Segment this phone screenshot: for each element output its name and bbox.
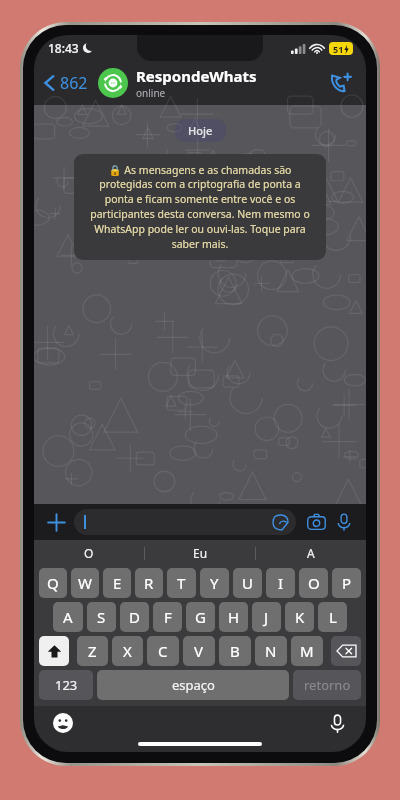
button[interactable]: retorno xyxy=(293,670,361,700)
button[interactable]: E xyxy=(103,568,131,598)
button[interactable]: Dictation xyxy=(324,710,350,736)
staticText: K xyxy=(295,607,305,627)
button[interactable]: Profile photo xyxy=(98,68,128,98)
button[interactable]: 🔒 As mensagens e as chamadas são protegi… xyxy=(74,154,326,260)
button[interactable]: G xyxy=(186,602,215,632)
button[interactable]: Shift xyxy=(39,636,69,666)
staticText: F xyxy=(164,607,172,627)
staticText: E xyxy=(113,573,122,593)
staticText: Hoje xyxy=(188,123,213,138)
button[interactable]: Emoji keyboard xyxy=(50,710,76,736)
button[interactable]: espaço xyxy=(97,670,289,700)
button[interactable]: Backspace xyxy=(331,636,361,666)
staticText: P xyxy=(342,573,352,593)
staticText: Eu xyxy=(193,545,208,561)
button[interactable]: V xyxy=(183,636,215,666)
button[interactable]: Voice message xyxy=(330,508,358,536)
button[interactable]: A xyxy=(53,602,83,632)
button[interactable]: Y xyxy=(200,568,229,598)
button[interactable]: Attach xyxy=(42,508,70,536)
staticText: B xyxy=(230,641,240,661)
button[interactable]: Camera xyxy=(302,508,330,536)
staticText: Q xyxy=(47,573,59,593)
button[interactable]: U xyxy=(233,568,262,598)
staticText: Y xyxy=(210,573,219,593)
staticText: T xyxy=(177,573,186,593)
staticText: espaço xyxy=(172,676,215,694)
button[interactable]: P xyxy=(332,568,361,598)
staticText: R xyxy=(144,573,154,593)
button[interactable]: Q xyxy=(39,568,67,598)
staticText: 123 xyxy=(55,676,78,694)
button[interactable]: 862 xyxy=(42,68,90,98)
button[interactable]: O xyxy=(299,568,328,598)
button[interactable]: K xyxy=(285,602,314,632)
button[interactable]: Profile photo xyxy=(98,66,324,100)
staticText: 18:43 xyxy=(48,40,79,56)
staticText: A xyxy=(307,545,315,561)
staticText: RespondeWhats xyxy=(136,66,257,86)
button[interactable]: D xyxy=(120,602,149,632)
staticText: U xyxy=(242,573,253,593)
staticText: W xyxy=(78,573,92,593)
button[interactable]: 123 xyxy=(39,670,93,700)
staticText: D xyxy=(129,607,140,627)
button[interactable]: A xyxy=(256,540,366,566)
button[interactable]: Video call xyxy=(324,66,358,100)
button[interactable]: C xyxy=(147,636,179,666)
button[interactable]: H xyxy=(219,602,248,632)
button[interactable]: Eu xyxy=(145,540,255,566)
button[interactable]: M xyxy=(291,636,323,666)
button[interactable]: J xyxy=(252,602,281,632)
staticText: 🔒 As mensagens e as chamadas são protegi… xyxy=(86,163,314,251)
staticText: 862 xyxy=(60,72,88,94)
staticText: G xyxy=(195,607,206,627)
button[interactable]: X xyxy=(112,636,143,666)
button[interactable] xyxy=(74,509,296,535)
staticText: N xyxy=(265,641,277,661)
button[interactable]: S xyxy=(87,602,116,632)
button[interactable]: R xyxy=(135,568,163,598)
button[interactable]: T xyxy=(167,568,196,598)
button[interactable]: O xyxy=(34,540,144,566)
button[interactable]: F xyxy=(153,602,182,632)
staticText: J xyxy=(264,607,269,627)
staticText: retorno xyxy=(304,676,351,694)
staticText: online xyxy=(136,86,166,100)
button[interactable]: L xyxy=(318,602,347,632)
button[interactable]: Z xyxy=(77,636,108,666)
staticText: A xyxy=(63,607,73,627)
staticText: O xyxy=(308,573,320,593)
button[interactable]: N xyxy=(255,636,287,666)
staticText: S xyxy=(97,607,106,627)
button[interactable]: W xyxy=(71,568,99,598)
staticText: C xyxy=(158,641,168,661)
staticText: I xyxy=(278,573,284,593)
staticText: X xyxy=(123,641,132,661)
staticText: L xyxy=(329,607,337,627)
staticText: Z xyxy=(88,641,97,661)
button[interactable]: B xyxy=(219,636,251,666)
staticText: M xyxy=(300,641,314,661)
staticText: O xyxy=(84,545,94,561)
staticText: V xyxy=(194,641,204,661)
staticText: 51 xyxy=(333,43,344,55)
button[interactable]: I xyxy=(266,568,295,598)
staticText: H xyxy=(228,607,240,627)
